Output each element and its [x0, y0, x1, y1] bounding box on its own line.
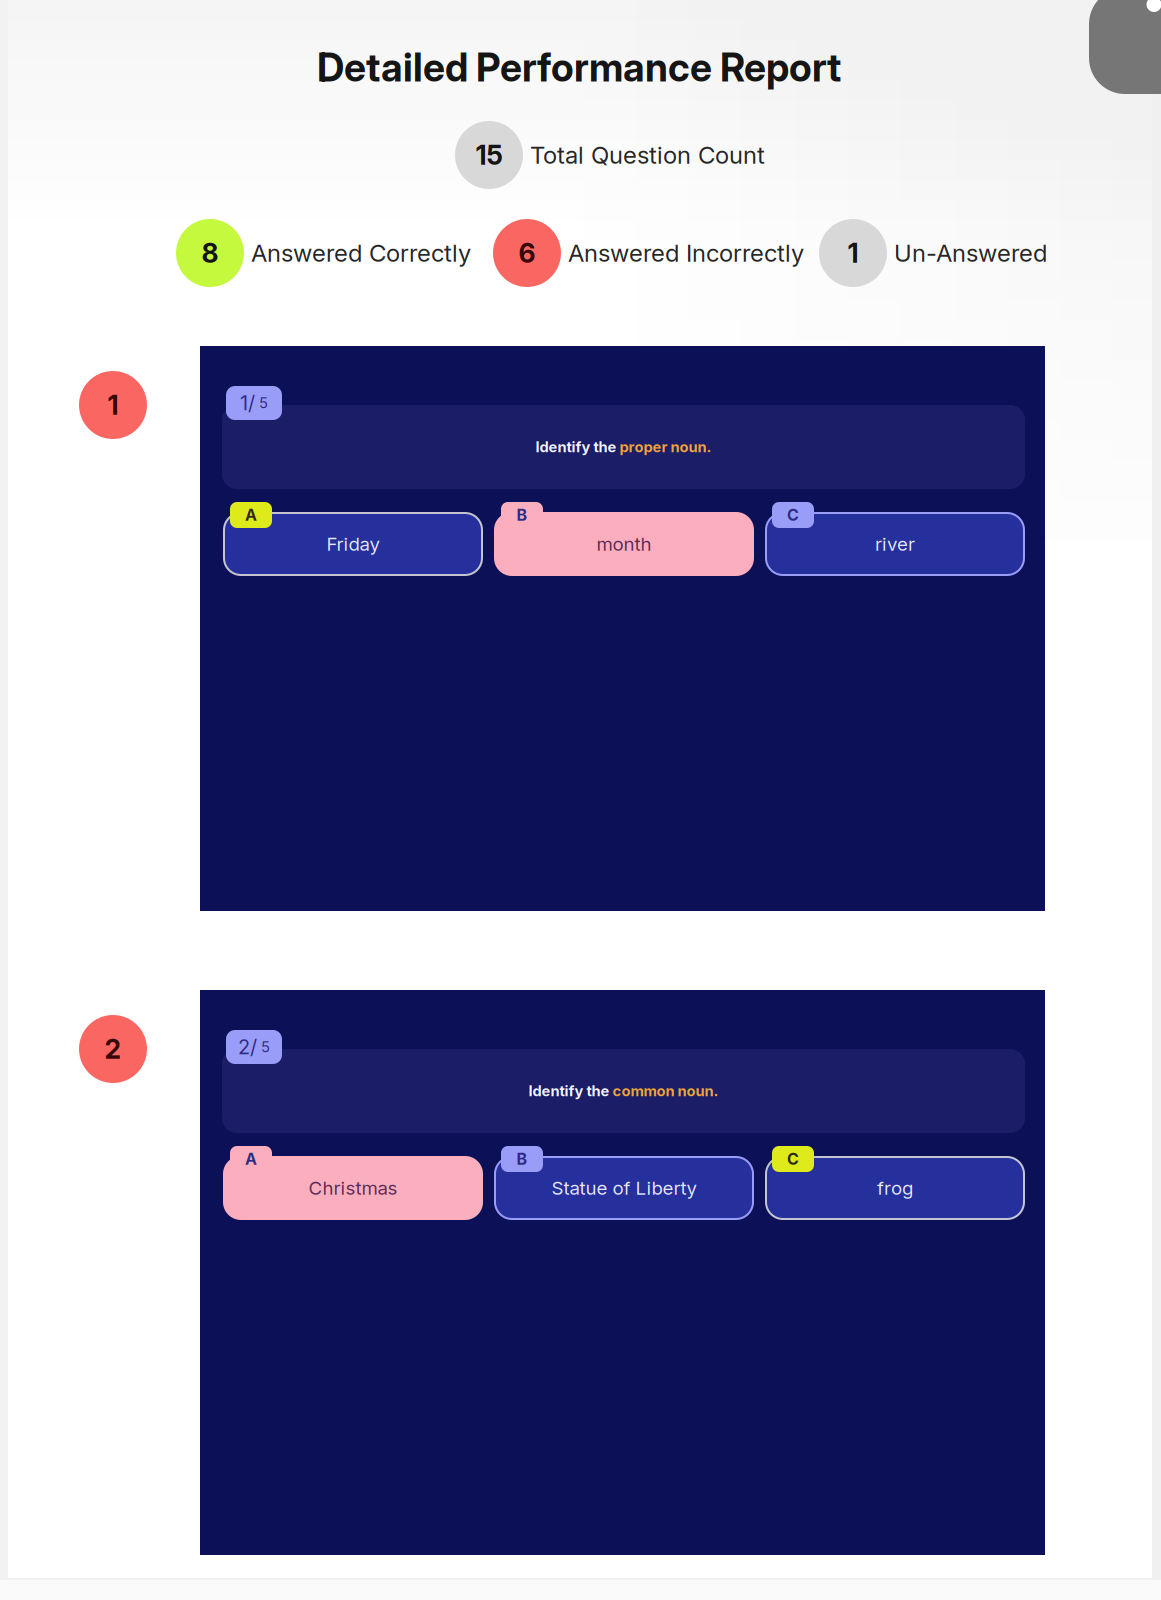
button[interactable]: Christmas: [224, 1146, 482, 1219]
staticText: month: [596, 533, 651, 555]
staticText: 2: [104, 1033, 121, 1065]
staticText: Answered Incorrectly: [568, 238, 804, 267]
button[interactable]: month: [495, 502, 753, 575]
staticText: 2/: [238, 1035, 257, 1059]
staticText: C: [787, 1149, 799, 1169]
button[interactable]: frog: [766, 1146, 1024, 1219]
button[interactable]: 8: [176, 219, 471, 287]
button[interactable]: river: [766, 502, 1024, 575]
staticText: 8: [201, 237, 218, 269]
staticText: proper noun.: [619, 438, 711, 456]
button[interactable]: Question 1: [79, 371, 147, 439]
staticText: 15: [475, 139, 502, 171]
staticText: 1: [847, 237, 858, 269]
staticText: 5: [255, 394, 268, 412]
button[interactable]: 6: [493, 219, 804, 287]
staticText: Total Question Count: [530, 140, 765, 169]
staticText: Answered Correctly: [251, 238, 471, 267]
staticText: 5: [257, 1038, 270, 1056]
button[interactable]: Floating menu: [1089, 0, 1161, 94]
staticText: river: [875, 533, 915, 555]
staticText: Detailed Performance Report: [317, 44, 841, 91]
staticText: Friday: [326, 533, 379, 555]
staticText: A: [245, 505, 257, 525]
staticText: Statue of Liberty: [551, 1177, 696, 1199]
staticText: Identify the: [528, 1082, 612, 1100]
staticText: A: [245, 1149, 257, 1169]
staticText: B: [516, 505, 527, 525]
staticText: frog: [877, 1177, 913, 1199]
staticText: Christmas: [308, 1177, 397, 1199]
button[interactable]: Question 2: [79, 1015, 147, 1083]
staticText: 6: [518, 237, 535, 269]
staticText: 1: [107, 389, 118, 421]
staticText: common noun.: [612, 1082, 718, 1100]
button[interactable]: Statue of Liberty: [495, 1146, 753, 1219]
staticText: Identify the: [535, 438, 619, 456]
button[interactable]: 1: [819, 219, 1047, 287]
staticText: 1/: [240, 391, 255, 415]
button[interactable]: Friday: [224, 502, 482, 575]
staticText: C: [787, 505, 799, 525]
staticText: B: [516, 1149, 527, 1169]
staticText: Un-Answered: [894, 238, 1047, 267]
button[interactable]: 15: [455, 121, 765, 189]
